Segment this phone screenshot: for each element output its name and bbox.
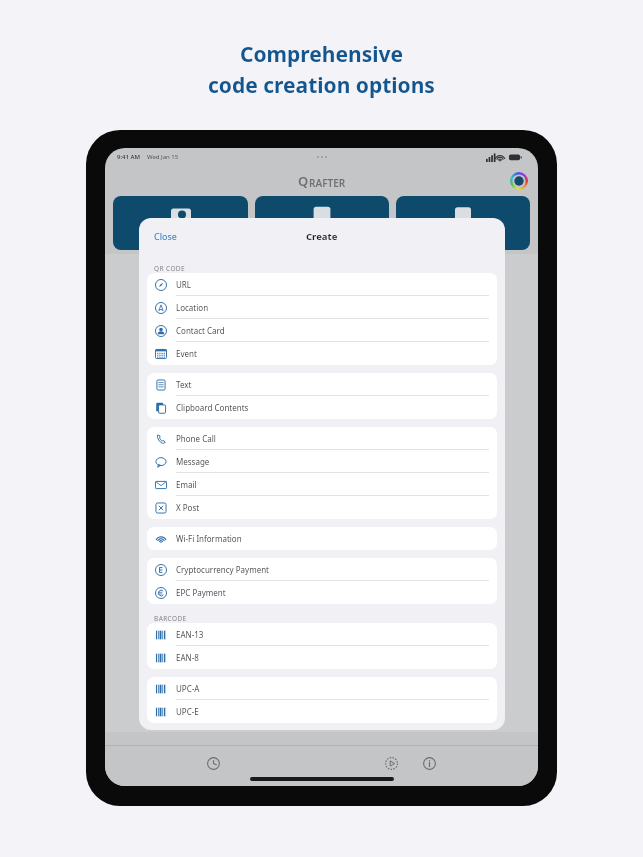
staticText: BARCODE <box>154 614 187 623</box>
button[interactable]: History <box>202 752 224 774</box>
button[interactable]: UPC-A <box>147 677 497 700</box>
button[interactable]: Color theme <box>510 172 528 190</box>
staticText: Q <box>298 172 309 190</box>
button[interactable]: Event <box>147 342 497 365</box>
button[interactable]: Action 2 <box>396 196 530 250</box>
staticText: Event <box>176 348 197 359</box>
staticText: Message <box>176 456 210 467</box>
staticText: Clipboard Contents <box>176 402 249 413</box>
button[interactable]: Wi-Fi Information <box>147 527 497 550</box>
staticText: Text <box>176 379 192 390</box>
button[interactable]: Email <box>147 473 497 496</box>
button[interactable]: EPC Payment <box>147 581 497 604</box>
button[interactable]: UPC-E <box>147 700 497 723</box>
staticText: EAN-8 <box>176 652 199 663</box>
staticText: Contact Card <box>176 325 225 336</box>
button[interactable]: Info <box>418 752 440 774</box>
staticText: Location <box>176 302 209 313</box>
button[interactable]: URL <box>147 273 497 296</box>
staticText: Cryptocurrency Payment <box>176 564 270 575</box>
button[interactable]: Cryptocurrency Payment <box>147 558 497 581</box>
button[interactable]: EAN-13 <box>147 623 497 646</box>
staticText: EAN-13 <box>176 629 204 640</box>
button[interactable]: Action 1 <box>255 196 389 250</box>
staticText: 9:41 AM <box>117 153 141 161</box>
staticText: QR CODE <box>154 264 186 273</box>
staticText: X Post <box>176 502 200 513</box>
button[interactable]: Location <box>147 296 497 319</box>
button[interactable]: Message <box>147 450 497 473</box>
staticText: RAFTER <box>309 176 346 190</box>
button[interactable]: Phone Call <box>147 427 497 450</box>
staticText: Wi-Fi Information <box>176 533 242 544</box>
staticText: EPC Payment <box>176 587 226 598</box>
staticText: UPC-E <box>176 706 199 717</box>
staticText: Create <box>306 230 338 243</box>
button[interactable]: Clipboard Contents <box>147 396 497 419</box>
button[interactable]: Generate <box>380 752 402 774</box>
staticText: Comprehensive <box>240 40 404 69</box>
staticText: URL <box>176 279 192 290</box>
staticText: Close <box>154 230 177 242</box>
staticText: Wed Jan 15 <box>147 153 179 161</box>
staticText: code creation options <box>208 71 435 100</box>
button[interactable]: Action 0 <box>113 196 248 250</box>
button[interactable]: X Post <box>147 496 497 519</box>
button[interactable]: Contact Card <box>147 319 497 342</box>
staticText: UPC-A <box>176 683 200 694</box>
staticText: Phone Call <box>176 433 216 444</box>
staticText: Email <box>176 479 197 490</box>
button[interactable]: EAN-8 <box>147 646 497 669</box>
button[interactable]: Text <box>147 373 497 396</box>
button[interactable]: Close <box>150 226 181 246</box>
